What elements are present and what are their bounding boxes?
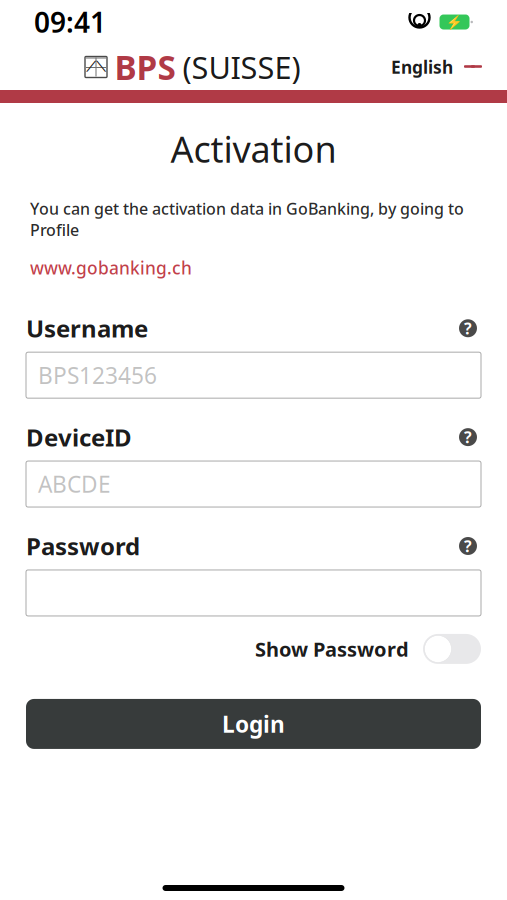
button[interactable]: www.gobanking.ch	[30, 253, 192, 282]
staticText: BPS123456	[38, 360, 157, 390]
staticText: ?	[464, 535, 472, 557]
button[interactable]: Help about Username	[455, 315, 481, 341]
staticText: www.gobanking.ch	[30, 256, 192, 279]
button[interactable]: Help about DeviceID	[455, 424, 481, 450]
staticText: Activation	[170, 125, 336, 173]
staticText: Login	[222, 709, 285, 739]
staticText: (SUISSE)	[182, 47, 300, 87]
staticText: ⟋⟍	[86, 60, 106, 74]
staticText: You can get the activation data in GoBan…	[30, 198, 464, 240]
staticText: Password	[26, 530, 140, 562]
staticText: English	[391, 55, 453, 78]
staticText: BPS	[114, 45, 175, 89]
staticText: DeviceID	[26, 421, 132, 453]
staticText: ?	[464, 426, 472, 448]
button[interactable]: Show Password	[255, 630, 481, 668]
staticText: ABCDE	[38, 469, 111, 499]
staticText: ?	[464, 318, 472, 339]
staticText: Username	[26, 312, 148, 344]
button[interactable]: Login	[26, 699, 481, 749]
staticText: Show Password	[255, 636, 409, 662]
staticText: ⚡	[446, 14, 463, 30]
button[interactable]: Help about Password	[455, 533, 481, 559]
staticText: 09:41	[34, 3, 106, 41]
button[interactable]: English	[385, 49, 489, 84]
